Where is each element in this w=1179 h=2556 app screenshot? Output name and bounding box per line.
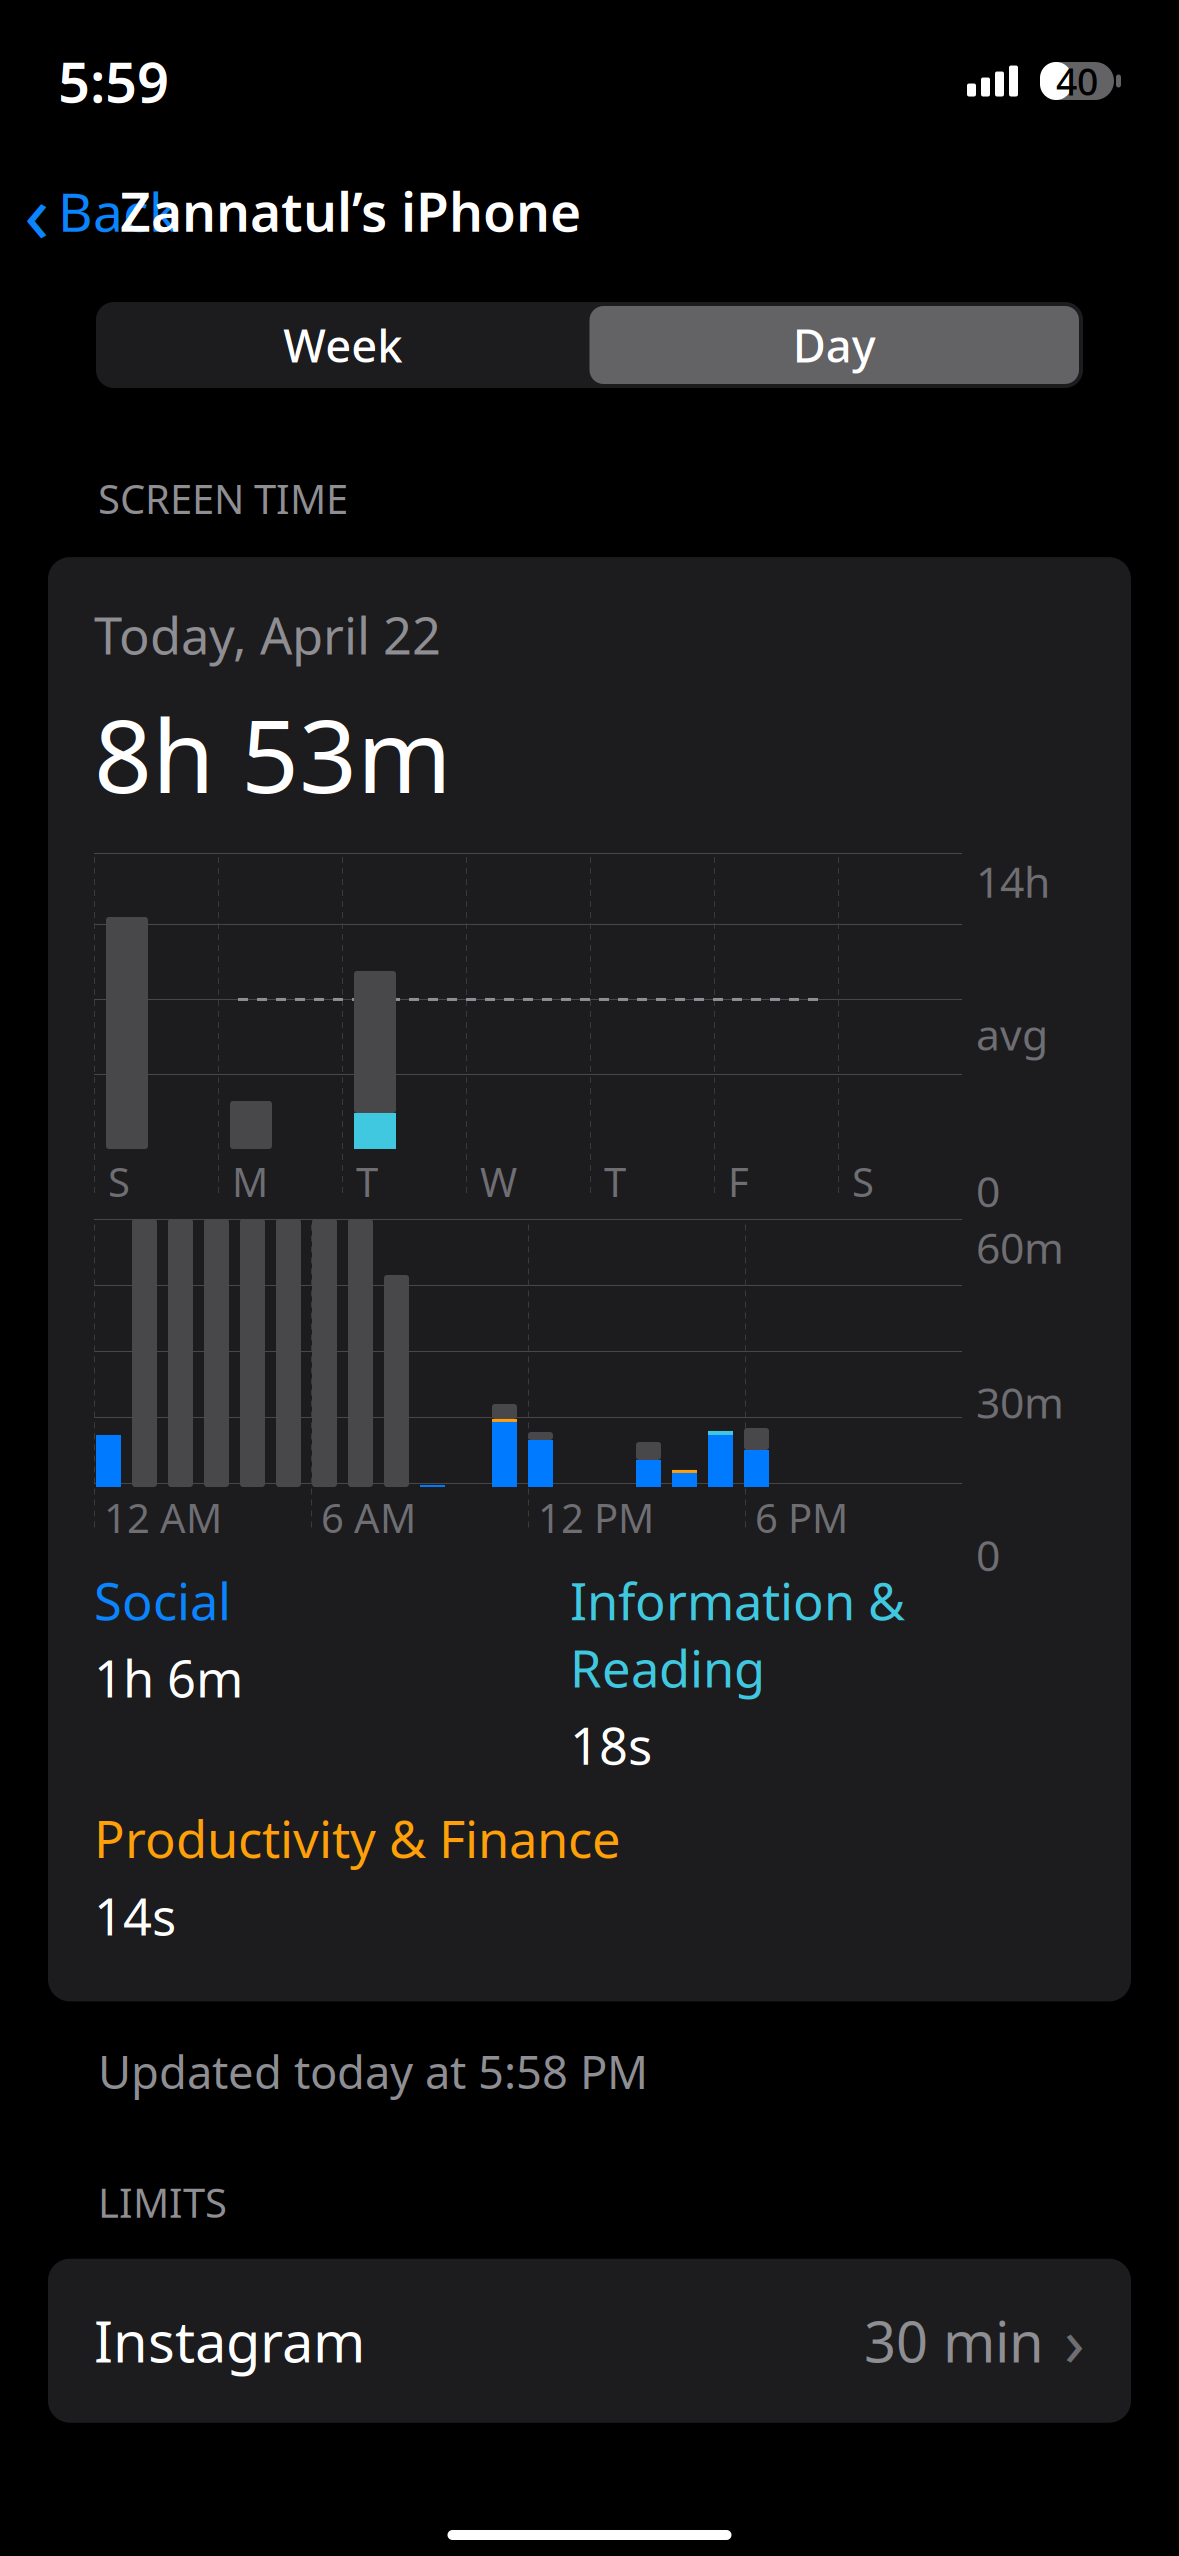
staticText: 0 <box>976 1162 1000 1219</box>
button[interactable]: ‹ <box>0 148 177 274</box>
staticText: Productivity & Finance <box>94 1805 621 1872</box>
staticText: Week <box>283 315 402 375</box>
staticText: Social <box>94 1567 231 1634</box>
staticText: F <box>728 1155 749 1208</box>
staticText: 0 <box>976 1526 1000 1583</box>
staticText: 5:59 <box>58 44 169 118</box>
staticText: T <box>604 1155 626 1208</box>
staticText: 60m <box>976 1219 1064 1276</box>
button[interactable]: Week <box>96 306 589 384</box>
staticText: Zannatul’s iPhone <box>120 176 581 246</box>
staticText: W <box>480 1155 517 1208</box>
staticText: ‹ <box>24 156 50 266</box>
staticText: Instagram <box>94 2303 365 2378</box>
staticText: SCREEN TIME <box>98 472 348 525</box>
staticText: 18s <box>570 1711 652 1779</box>
staticText: 14h <box>976 853 1050 910</box>
button[interactable]: Day <box>589 302 1083 388</box>
staticText: 30 min <box>864 2303 1044 2378</box>
staticText: M <box>232 1155 268 1208</box>
staticText: Back <box>58 176 177 246</box>
staticText: Today, April 22 <box>94 601 441 668</box>
staticText: T <box>356 1155 378 1208</box>
staticText: 6 AM <box>321 1491 416 1544</box>
staticText: LIMITS <box>98 2176 227 2229</box>
staticText: 14s <box>94 1882 176 1949</box>
staticText: Information & Reading <box>570 1567 905 1702</box>
button[interactable]: Instagram <box>48 2259 1131 2423</box>
staticText: 40 <box>1056 56 1098 106</box>
staticText: Day <box>793 315 876 375</box>
staticText: Updated today at 5:58 PM <box>98 2041 648 2102</box>
staticText: › <box>1064 2296 1085 2385</box>
staticText: 30m <box>976 1374 1064 1430</box>
staticText: 12 AM <box>104 1491 222 1544</box>
staticText: avg <box>976 1006 1048 1062</box>
staticText: 1h 6m <box>94 1644 243 1712</box>
staticText: S <box>108 1155 130 1208</box>
staticText: 12 PM <box>538 1491 654 1544</box>
staticText: 6 PM <box>755 1491 848 1544</box>
staticText: S <box>852 1155 874 1208</box>
staticText: 8h 53m <box>94 686 452 821</box>
